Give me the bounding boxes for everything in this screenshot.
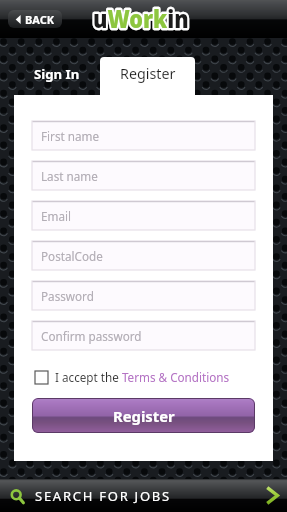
button[interactable]: BACK [8, 10, 62, 28]
button[interactable]: First name [32, 121, 255, 150]
button[interactable]: Last name [32, 161, 255, 190]
staticText: PostalCode [41, 248, 103, 264]
button[interactable]: I accept the Terms & Conditions [35, 369, 230, 385]
button[interactable]: Email [32, 201, 255, 230]
button[interactable]: Confirm password [32, 321, 255, 350]
button[interactable]: Register [32, 398, 255, 433]
staticText: uWorkin [93, 1, 189, 35]
button[interactable]: Password [32, 281, 255, 310]
button[interactable]: Register [100, 57, 195, 97]
staticText: First name [41, 128, 100, 144]
button[interactable]: SEARCH FOR JOBS [0, 479, 287, 512]
button[interactable]: PostalCode [32, 241, 255, 270]
staticText: uWorkin [93, 1, 189, 35]
staticText: BACK [25, 12, 55, 27]
staticText: Last name [41, 168, 98, 184]
staticText: Register [120, 64, 176, 83]
staticText: SEARCH FOR JOBS [35, 487, 171, 505]
staticText: Password [41, 288, 94, 304]
button[interactable]: Sign In [17, 55, 97, 93]
staticText: I accept the Terms & Conditions [55, 369, 230, 385]
staticText: Email [41, 208, 72, 224]
staticText: Confirm password [41, 328, 142, 344]
staticText: Sign In [34, 65, 80, 83]
staticText: Register [113, 406, 175, 426]
